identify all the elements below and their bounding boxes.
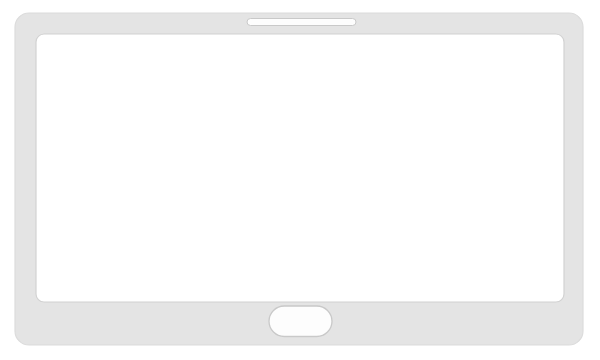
button[interactable]: Tablet device illustration	[0, 0, 600, 360]
